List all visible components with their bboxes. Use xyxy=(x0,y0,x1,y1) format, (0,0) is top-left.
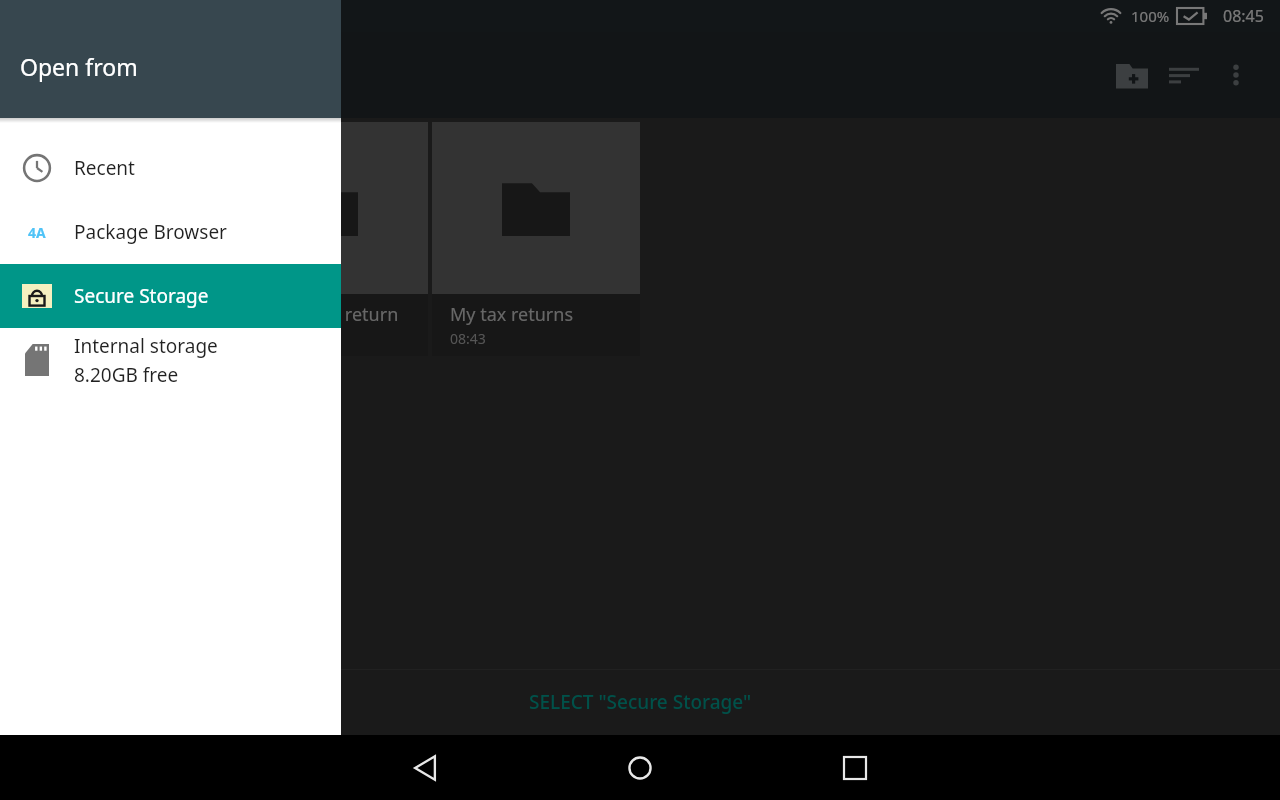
staticText: Open from xyxy=(20,51,138,82)
staticText: 8.20GB free xyxy=(74,362,179,388)
staticText: My tax returns xyxy=(450,302,574,327)
staticText: 08:43 xyxy=(450,329,486,348)
button[interactable]: Recent xyxy=(0,136,341,200)
button[interactable]: My 2023 tax return xyxy=(220,122,428,356)
button[interactable]: Internal storage xyxy=(0,328,341,392)
button[interactable]: Recents xyxy=(829,742,881,794)
button[interactable]: Home xyxy=(614,742,666,794)
button[interactable]: New folder xyxy=(1106,49,1158,101)
staticText: SELECT "Secure Storage" xyxy=(529,689,752,715)
button[interactable]: More options xyxy=(1210,49,1262,101)
staticText: 100% xyxy=(1131,6,1170,26)
button[interactable]: My tax returns xyxy=(432,122,640,356)
button[interactable]: Back xyxy=(399,742,451,794)
button[interactable]: Secure Storage xyxy=(0,264,341,328)
staticText: 08:45 xyxy=(1223,5,1264,27)
staticText: Internal storage xyxy=(74,333,218,359)
staticText: Package Browser xyxy=(74,219,227,245)
staticText: Secure Storage xyxy=(74,283,209,309)
button[interactable]: Sort xyxy=(1158,49,1210,101)
button[interactable]: 4A xyxy=(0,200,341,264)
staticText: My 2023 tax return xyxy=(238,302,399,327)
button[interactable]: SELECT "Secure Storage" xyxy=(0,669,1280,735)
staticText: Recent xyxy=(74,155,135,181)
staticText: 4A xyxy=(28,223,46,242)
